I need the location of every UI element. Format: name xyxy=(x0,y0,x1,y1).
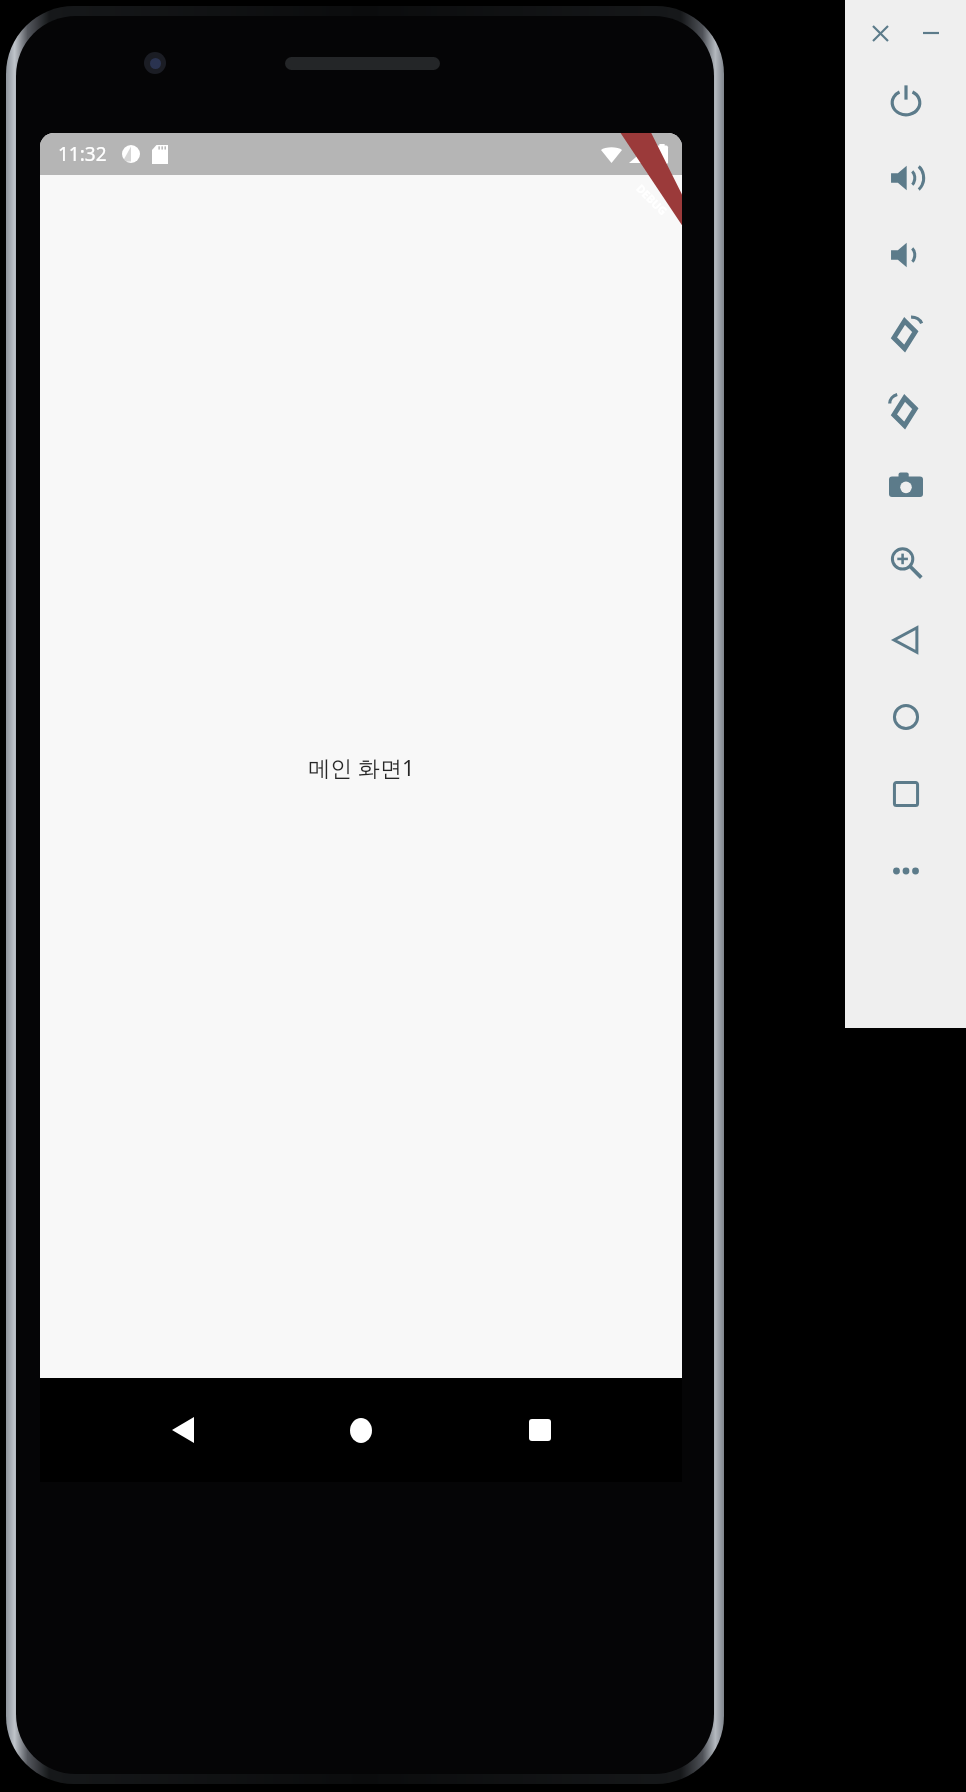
button[interactable]: Close xyxy=(863,16,897,50)
button[interactable]: Back xyxy=(147,1394,219,1466)
staticText: 11:32 xyxy=(58,141,107,167)
button[interactable]: More xyxy=(845,832,966,909)
button[interactable]: Back xyxy=(845,601,966,678)
button[interactable]: Rotate right xyxy=(845,370,966,447)
button[interactable]: Take screenshot xyxy=(845,447,966,524)
button[interactable]: Zoom xyxy=(845,524,966,601)
button[interactable]: Recent apps xyxy=(504,1394,576,1466)
button[interactable]: Rotate left xyxy=(845,293,966,370)
button[interactable]: Minimize xyxy=(914,16,948,50)
button[interactable]: Home xyxy=(325,1394,397,1466)
button[interactable]: Home xyxy=(845,678,966,755)
staticText: 메인 화면1 xyxy=(308,752,415,782)
button[interactable]: Overview xyxy=(845,755,966,832)
button[interactable]: Power xyxy=(845,62,966,139)
staticText: DEBUG xyxy=(633,181,671,218)
button[interactable]: Volume down xyxy=(845,216,966,293)
button[interactable]: Volume up xyxy=(845,139,966,216)
